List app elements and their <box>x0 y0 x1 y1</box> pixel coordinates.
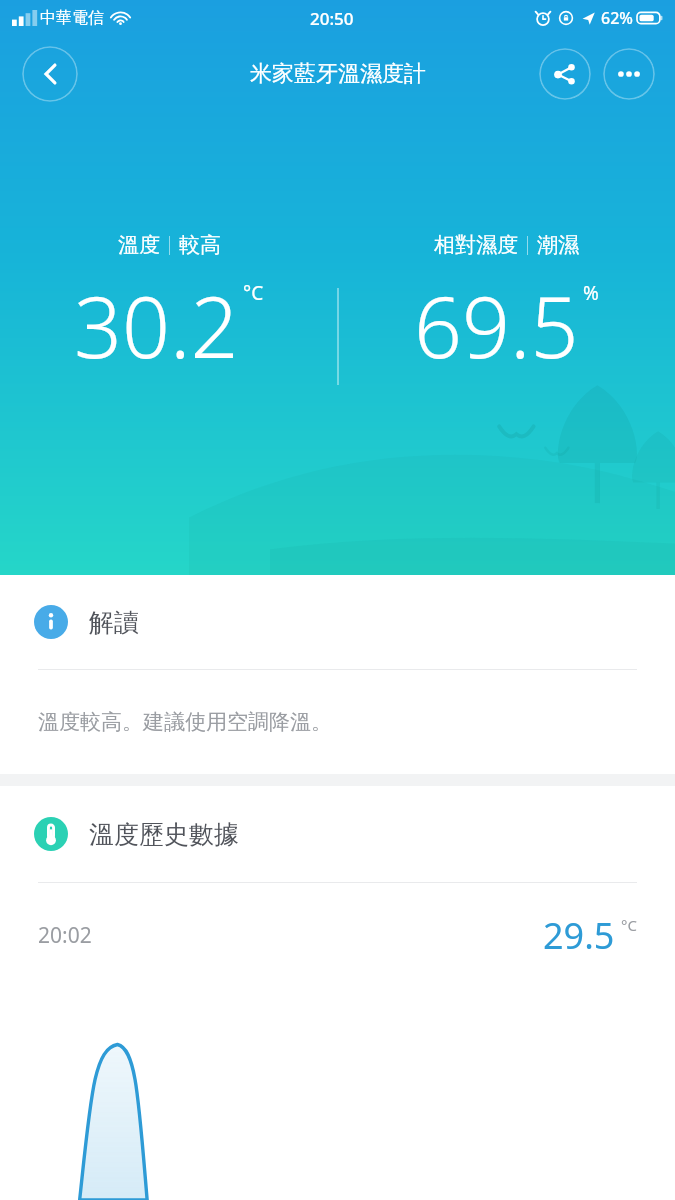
button[interactable]: 解讀 <box>0 575 675 669</box>
button[interactable]: Share <box>539 48 591 100</box>
staticText: 中華電信 <box>40 8 104 28</box>
staticText: °C <box>243 280 264 306</box>
staticText: 20:50 <box>310 7 354 30</box>
staticText: 溫度 <box>118 232 160 258</box>
staticText: 相對濕度 <box>434 232 518 258</box>
staticText: 20:02 <box>38 921 92 950</box>
staticText: 69.5 <box>414 268 579 382</box>
staticText: 潮濕 <box>537 232 579 258</box>
staticText: °C <box>621 915 637 935</box>
button[interactable]: 溫度歷史數據 <box>0 786 675 882</box>
staticText: 米家藍牙溫濕度計 <box>250 60 426 88</box>
staticText: 溫度較高。建議使用空調降溫。 <box>38 709 332 735</box>
staticText: 較高 <box>179 232 221 258</box>
staticText: 解讀 <box>89 607 139 638</box>
staticText: 29.5 <box>543 911 615 960</box>
button[interactable]: Back <box>22 46 78 102</box>
button[interactable]: More options <box>603 48 655 100</box>
staticText: % <box>583 280 599 306</box>
staticText: 62% <box>601 7 633 29</box>
staticText: 溫度歷史數據 <box>89 819 239 850</box>
staticText: 30.2 <box>74 268 239 382</box>
